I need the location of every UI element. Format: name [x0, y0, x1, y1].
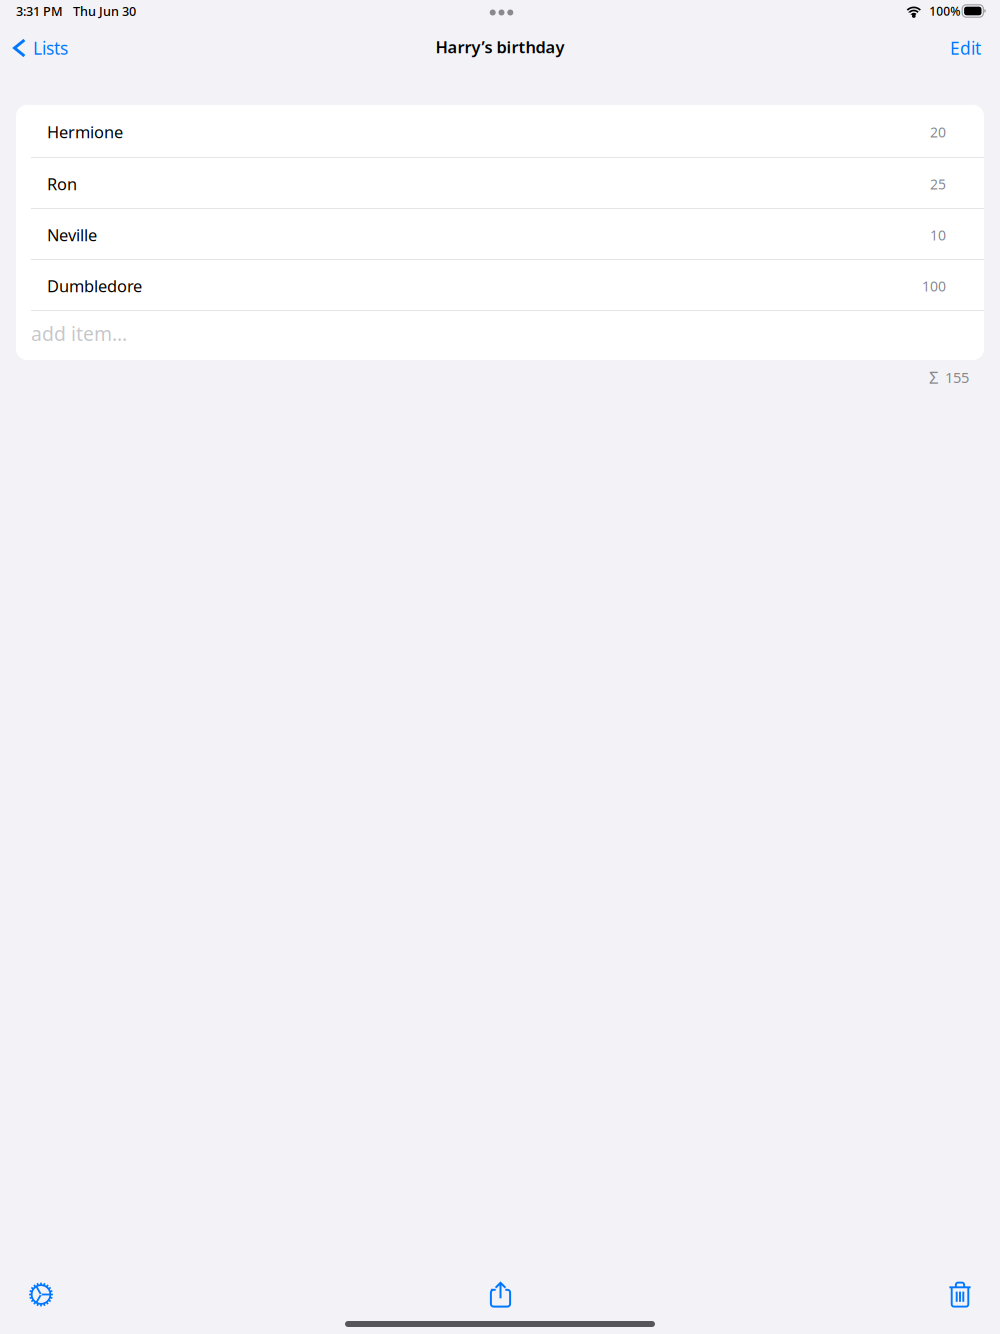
- staticText: 155: [945, 367, 969, 387]
- staticText: 100%: [929, 3, 960, 19]
- button[interactable]: Delete: [928, 1263, 992, 1319]
- button[interactable]: Lists: [0, 24, 78, 70]
- staticText: 100: [922, 276, 946, 296]
- button[interactable]: Edit: [936, 24, 1000, 70]
- staticText: Lists: [33, 36, 68, 60]
- button[interactable]: add item...: [16, 311, 984, 360]
- button[interactable]: Share: [468, 1263, 532, 1319]
- staticText: 3:31 PM: [16, 2, 63, 20]
- button[interactable]: Ron: [16, 158, 984, 208]
- button[interactable]: Dumbledore: [16, 260, 984, 310]
- staticText: Σ: [929, 366, 939, 389]
- staticText: Neville: [47, 224, 97, 246]
- staticText: Ron: [47, 173, 77, 195]
- staticText: Hermione: [47, 121, 123, 143]
- staticText: Dumbledore: [47, 275, 142, 297]
- button[interactable]: Settings: [9, 1263, 73, 1319]
- staticText: add item...: [31, 320, 127, 347]
- staticText: 25: [930, 174, 946, 194]
- staticText: 10: [930, 225, 946, 245]
- button[interactable]: Hermione: [16, 105, 984, 157]
- staticText: Harry’s birthday: [435, 36, 564, 58]
- button[interactable]: Neville: [16, 209, 984, 259]
- staticText: 20: [930, 122, 946, 142]
- staticText: Thu Jun 30: [73, 2, 136, 20]
- staticText: Edit: [950, 36, 981, 60]
